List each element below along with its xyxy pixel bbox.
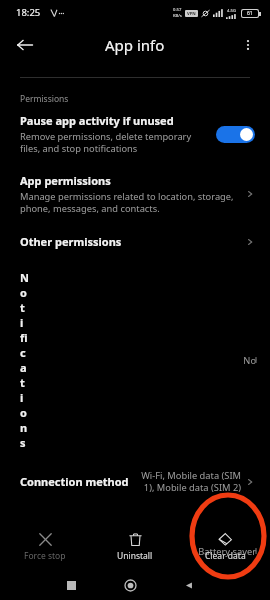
- button[interactable]: Back: [8, 28, 42, 62]
- staticText: Other permissions: [20, 234, 122, 249]
- staticText: 4.5G: [227, 8, 236, 14]
- staticText: Connection method: [20, 474, 129, 489]
- button[interactable]: Recents: [56, 570, 86, 600]
- staticText: Force stop: [24, 550, 66, 562]
- button[interactable]: Back: [174, 570, 204, 600]
- staticText: Remove permissions, delete temporary fil…: [20, 130, 192, 155]
- button[interactable]: Uninstall: [90, 528, 180, 566]
- button[interactable]: Battery saver: [0, 503, 270, 600]
- staticText: App permissions: [20, 173, 111, 188]
- button[interactable]: Connection method: [0, 461, 270, 503]
- other: Force stop: [38, 532, 53, 547]
- button[interactable]: Clear data: [180, 527, 270, 566]
- button[interactable]: Notifications: [0, 260, 270, 461]
- staticText: 61: [247, 10, 253, 17]
- button[interactable]: Home: [115, 570, 145, 600]
- button[interactable]: Other permissions: [0, 224, 270, 260]
- staticText: Uninstall: [117, 550, 153, 562]
- staticText: No: [24, 354, 256, 367]
- button[interactable]: App permissions: [0, 164, 270, 224]
- button[interactable]: [216, 126, 255, 143]
- other: Uninstall: [128, 532, 143, 547]
- staticText: VPN: [187, 11, 196, 17]
- staticText: KB/s: [173, 13, 182, 19]
- staticText: Permissions: [20, 93, 69, 105]
- staticText: Wi-Fi, Mobile data (SIM 1), Mobile data …: [141, 469, 241, 494]
- staticText: 0.57: [173, 7, 182, 13]
- button[interactable]: More options: [232, 29, 264, 61]
- button[interactable]: Pause app activity if unused: [0, 113, 270, 164]
- button[interactable]: Force stop: [0, 528, 90, 566]
- staticText: App info: [105, 35, 165, 55]
- staticText: 18:25: [16, 6, 41, 19]
- staticText: Battery saver: [24, 545, 256, 558]
- staticText: Manage permissions related to location, …: [20, 190, 234, 215]
- staticText: Clear data: [205, 550, 246, 562]
- staticText: Pause app activity if unused: [20, 113, 174, 128]
- other: Clear data: [217, 531, 233, 547]
